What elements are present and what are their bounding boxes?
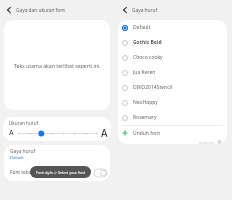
staticText: A <box>9 128 14 138</box>
button[interactable]: Font size slider <box>18 128 98 139</box>
staticText: DIKO2014Stencil <box>133 84 173 91</box>
button[interactable]: Back <box>120 5 130 15</box>
button[interactable]: Font tebal <box>4 164 110 181</box>
staticText: Default <box>133 24 151 31</box>
staticText: Ukuran huruf <box>9 120 39 126</box>
staticText: Jua Keren <box>133 69 156 76</box>
button[interactable]: Jua Keren <box>118 65 227 80</box>
staticText: Gaya dan ukuran font <box>16 7 65 14</box>
button[interactable]: DIKO2014Stencil <box>118 80 227 95</box>
button[interactable]: Rosemary <box>118 110 227 125</box>
staticText: NeoHappy <box>133 99 158 106</box>
button[interactable]: Unduh font <box>118 126 227 140</box>
staticText: Font style -> Select your font <box>36 170 86 175</box>
staticText: Unduh font <box>133 130 160 137</box>
staticText: Default <box>10 155 24 160</box>
staticText: Choco cooky <box>133 54 163 61</box>
button[interactable]: Font tebal toggle <box>94 169 107 177</box>
staticText: Teks utama akan terlihat seperti ini. <box>14 62 101 69</box>
staticText: A <box>101 126 108 140</box>
button[interactable]: NeoHappy <box>118 95 227 110</box>
staticText: Anda.org <box>199 140 215 144</box>
staticText: Font tebal <box>10 169 33 176</box>
staticText: Rosemary <box>133 114 157 121</box>
staticText: Gothic Bold <box>133 39 162 46</box>
button[interactable]: Gaya huruf <box>4 145 110 164</box>
button[interactable]: Gothic Bold <box>118 35 227 50</box>
staticText: Gaya huruf <box>10 148 36 155</box>
button[interactable]: Back <box>4 5 14 15</box>
button[interactable]: Choco cooky <box>118 50 227 65</box>
button[interactable]: Default <box>118 20 227 35</box>
staticText: Gaya huruf <box>132 7 158 14</box>
button[interactable]: Font style -> Select your font <box>30 166 91 178</box>
